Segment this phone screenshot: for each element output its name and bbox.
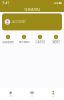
button[interactable]: CARDS [32,35,48,44]
button[interactable]: CARD [21,91,43,97]
button[interactable]: MORE [48,35,64,44]
staticText: TRANSFER [2,40,14,44]
staticText: MORE [52,40,59,44]
staticText: ACCOUNT [12,20,25,24]
button[interactable]: ME [43,91,64,97]
staticText: PAYMENT [18,40,29,44]
staticText: ME [52,95,54,97]
button[interactable]: HOME [0,91,21,97]
button[interactable]: TRANSFER [0,35,16,44]
button[interactable]: PAYMENT [16,35,32,44]
staticText: CARDS [35,40,44,44]
button[interactable]: ACCOUNT [2,13,62,30]
staticText: 9:41 [2,1,9,5]
staticText: HOME [9,95,13,97]
staticText: TJ BANQ [24,6,40,12]
